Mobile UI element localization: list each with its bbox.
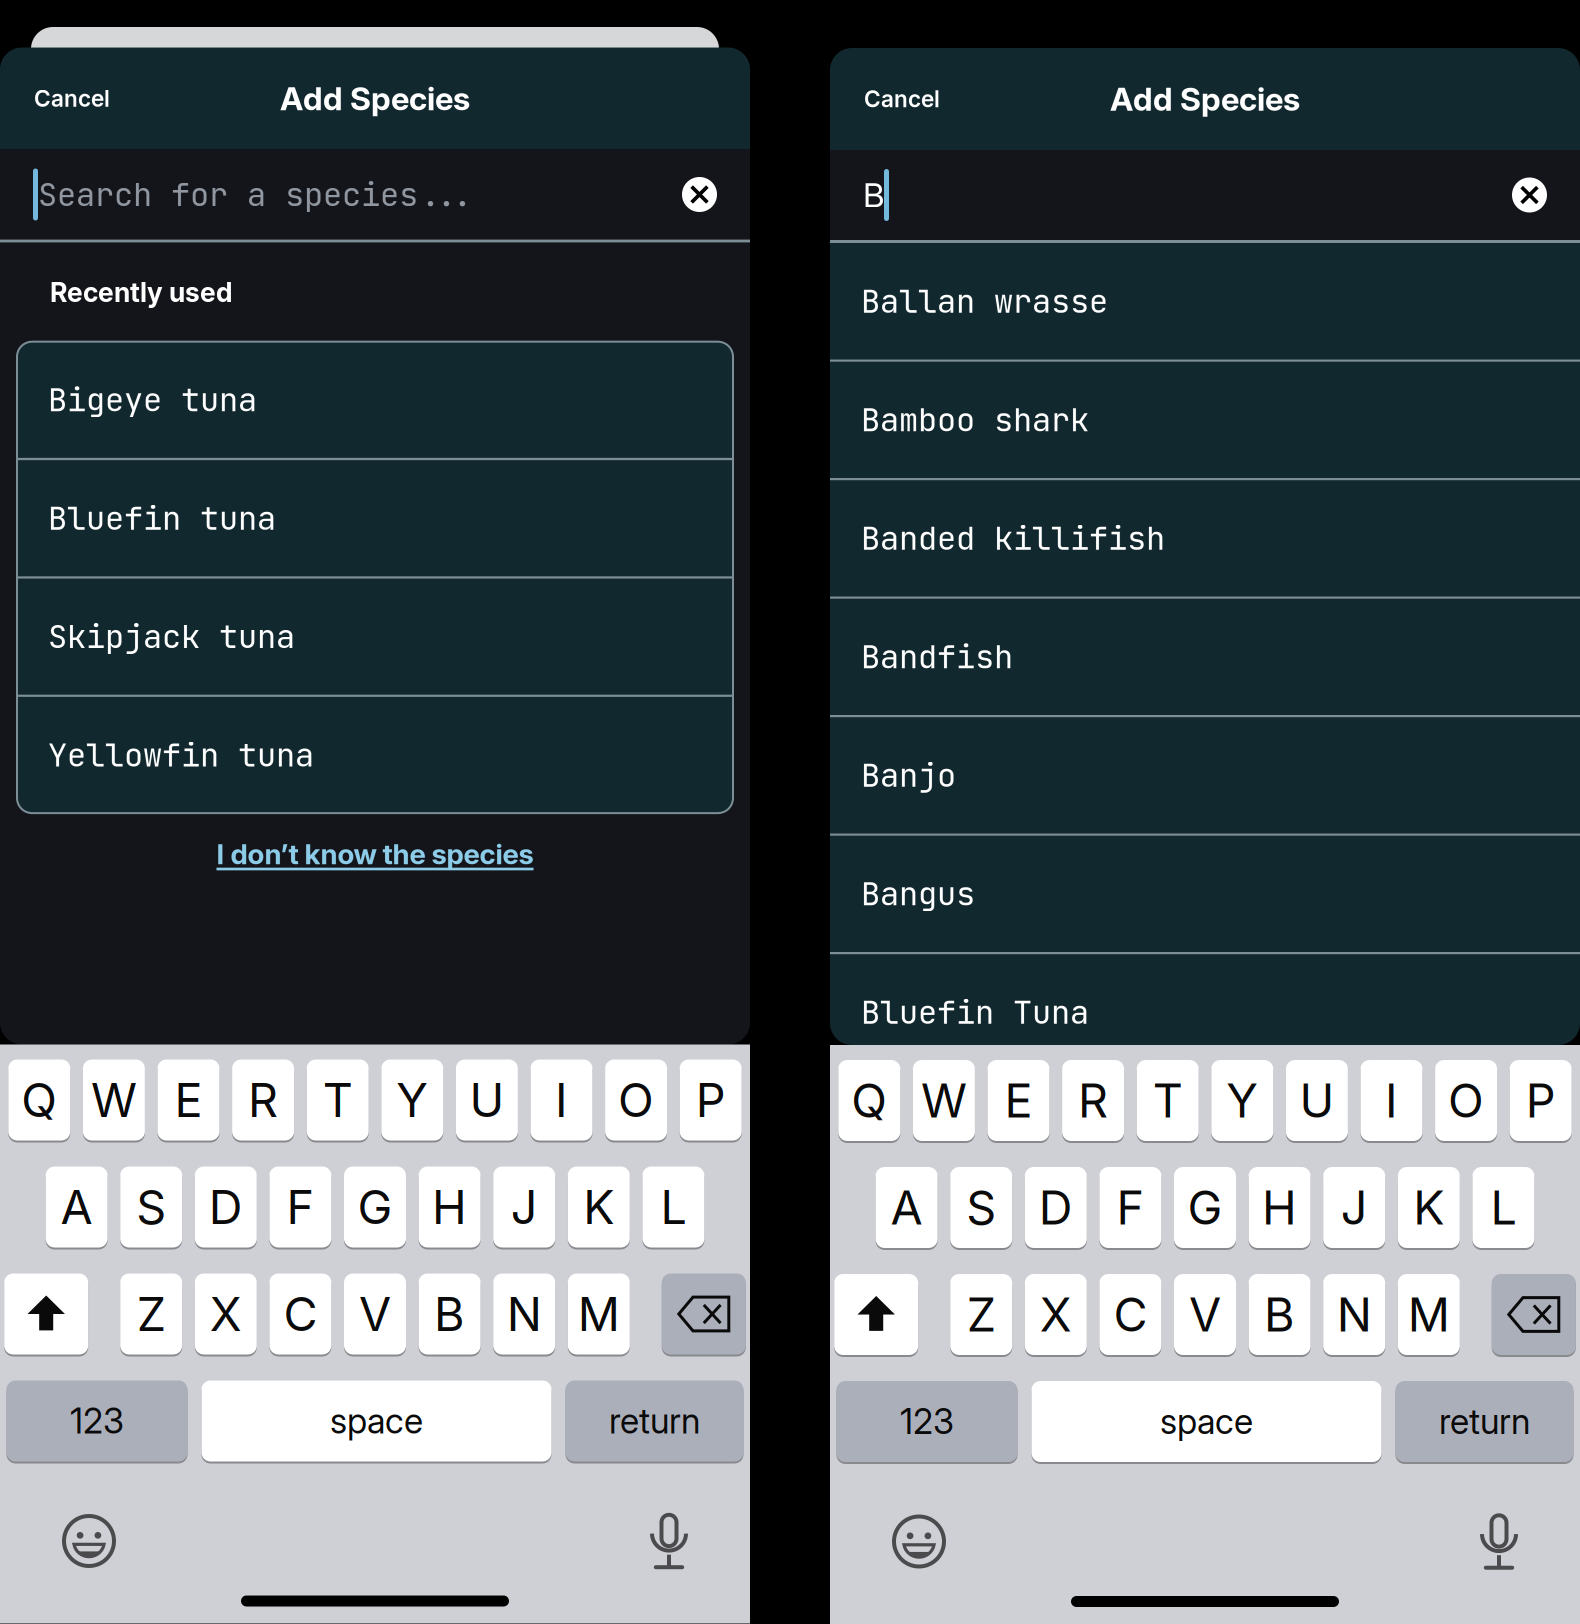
button[interactable]: R	[1062, 1059, 1124, 1142]
staticText: U	[469, 1072, 504, 1128]
button[interactable]: Delete	[1492, 1273, 1576, 1356]
button[interactable]: S	[120, 1165, 182, 1248]
button[interactable]: Shift	[834, 1273, 918, 1356]
button[interactable]: P	[680, 1058, 742, 1141]
button[interactable]: Clear text	[1512, 177, 1547, 212]
button[interactable]: D	[195, 1165, 257, 1248]
staticText: Recently used	[50, 276, 233, 308]
button[interactable]: G	[1174, 1166, 1236, 1249]
button[interactable]: Delete	[662, 1272, 746, 1355]
button[interactable]: Bluefin Tuna	[830, 954, 1580, 1070]
button[interactable]: Y	[1211, 1059, 1273, 1142]
button[interactable]: O	[1435, 1059, 1497, 1142]
staticText: T	[1153, 1072, 1183, 1129]
button[interactable]: X	[1025, 1273, 1087, 1356]
button[interactable]: E	[987, 1059, 1049, 1142]
button[interactable]: N	[1323, 1273, 1385, 1356]
button[interactable]: K	[1398, 1166, 1460, 1249]
button[interactable]: Emoji keyboard	[876, 1502, 962, 1580]
button[interactable]: return	[1395, 1380, 1573, 1463]
button[interactable]: N	[493, 1272, 555, 1355]
button[interactable]: W	[913, 1059, 975, 1142]
button[interactable]: Q	[8, 1058, 70, 1141]
button[interactable]: space	[201, 1379, 551, 1462]
button[interactable]: Shift	[4, 1272, 88, 1355]
button[interactable]: Bluefin tuna	[17, 460, 733, 576]
button[interactable]: Q	[838, 1059, 900, 1142]
button[interactable]: W	[83, 1058, 145, 1141]
button[interactable]: L	[1472, 1166, 1534, 1249]
button[interactable]: J	[1323, 1166, 1385, 1249]
button[interactable]: X	[195, 1272, 257, 1355]
button[interactable]: I	[1360, 1059, 1422, 1142]
button[interactable]: Y	[381, 1058, 443, 1141]
button[interactable]: Ballan wrasse	[830, 243, 1580, 359]
button[interactable]: H	[1249, 1166, 1311, 1249]
staticText: L	[660, 1179, 686, 1235]
staticText: F	[286, 1179, 314, 1235]
button[interactable]: D	[1025, 1166, 1087, 1249]
button[interactable]: return	[565, 1379, 743, 1462]
button[interactable]: Emoji keyboard	[46, 1502, 132, 1580]
button[interactable]: V	[1174, 1273, 1236, 1356]
button[interactable]: A	[46, 1165, 108, 1248]
staticText: E	[174, 1072, 202, 1128]
button[interactable]: B	[419, 1272, 481, 1355]
button[interactable]: Bamboo shark	[830, 362, 1580, 478]
button[interactable]: F	[1099, 1166, 1161, 1249]
button[interactable]: space	[1031, 1380, 1381, 1463]
button[interactable]: Bandfish	[830, 599, 1580, 715]
button[interactable]: P	[1510, 1059, 1572, 1142]
button[interactable]: Skipjack tuna	[17, 578, 733, 695]
button[interactable]: Bangus	[830, 836, 1580, 952]
button[interactable]: C	[1099, 1273, 1161, 1356]
staticText: R	[248, 1072, 278, 1128]
button[interactable]: M	[568, 1272, 630, 1355]
button[interactable]: T	[307, 1058, 369, 1141]
staticText: Add Species	[280, 79, 470, 118]
button[interactable]: U	[456, 1058, 518, 1141]
button[interactable]: S	[950, 1166, 1012, 1249]
button[interactable]: I	[530, 1058, 592, 1141]
staticText: T	[323, 1072, 353, 1128]
button[interactable]: Z	[120, 1272, 182, 1355]
staticText: B	[434, 1286, 465, 1342]
button[interactable]: Clear text	[682, 177, 717, 212]
button[interactable]: K	[568, 1165, 630, 1248]
button[interactable]: V	[344, 1272, 406, 1355]
button[interactable]: C	[269, 1272, 331, 1355]
button[interactable]: U	[1286, 1059, 1348, 1142]
button[interactable]: Yellowfin tuna	[17, 697, 733, 813]
staticText: Search for a species...	[38, 173, 475, 216]
staticText: G	[357, 1179, 392, 1235]
staticText: S	[966, 1179, 996, 1236]
button[interactable]: Dictation	[626, 1501, 704, 1580]
button[interactable]: A	[876, 1166, 938, 1249]
button[interactable]: I don’t know the species	[186, 813, 563, 897]
button[interactable]: F	[269, 1165, 331, 1248]
button[interactable]: B	[1249, 1273, 1311, 1356]
button[interactable]: J	[493, 1165, 555, 1248]
staticText: Cancel	[34, 85, 110, 112]
button[interactable]: L	[642, 1165, 704, 1248]
staticText: Bamboo shark	[861, 399, 1089, 441]
button[interactable]: Cancel	[16, 69, 128, 128]
button[interactable]: H	[419, 1165, 481, 1248]
button[interactable]: M	[1398, 1273, 1460, 1356]
button[interactable]: Bigeye tuna	[17, 342, 733, 458]
button[interactable]: Banded killifish	[830, 480, 1580, 596]
button[interactable]: 123	[836, 1380, 1017, 1463]
button[interactable]: O	[605, 1058, 667, 1141]
button[interactable]: Cancel	[846, 69, 958, 129]
staticText: W	[921, 1072, 967, 1129]
button[interactable]: 123	[6, 1379, 187, 1462]
staticText: R	[1078, 1072, 1108, 1129]
button[interactable]: E	[157, 1058, 219, 1141]
button[interactable]: R	[232, 1058, 294, 1141]
button[interactable]: Z	[950, 1273, 1012, 1356]
staticText: A	[61, 1179, 93, 1235]
button[interactable]: G	[344, 1165, 406, 1248]
button[interactable]: T	[1137, 1059, 1199, 1142]
button[interactable]: Banjo	[830, 717, 1580, 833]
button[interactable]: Dictation	[1456, 1502, 1534, 1581]
